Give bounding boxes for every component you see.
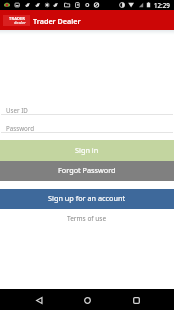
staticText: TRADER [9, 16, 26, 21]
staticText: Sign up for an account [48, 193, 126, 203]
staticText: Terms of use [67, 214, 107, 223]
staticText: Forgot Password [58, 165, 116, 175]
staticText: Trader Dealer [33, 16, 81, 26]
button[interactable]: Back [29, 290, 49, 310]
staticText: 12:29 [154, 1, 170, 9]
button[interactable]: Terms of use [0, 212, 174, 224]
staticText: dealer [14, 20, 26, 25]
staticText: Password [6, 124, 34, 132]
button[interactable]: Recents [126, 290, 146, 310]
button[interactable]: Sign in [0, 140, 174, 161]
staticText: Sign in [75, 145, 99, 155]
staticText: User ID [6, 106, 28, 114]
button[interactable]: Home [77, 290, 97, 310]
button[interactable]: Forgot Password [0, 161, 174, 181]
button[interactable]: Sign up for an account [0, 189, 174, 209]
